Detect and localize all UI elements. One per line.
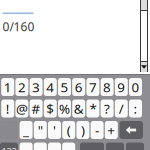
- button[interactable]: 4: [44, 78, 57, 96]
- button[interactable]: 2: [15, 78, 28, 96]
- button[interactable]: +: [105, 121, 118, 139]
- staticText: ): [81, 121, 85, 139]
- button[interactable]: !: [1, 99, 14, 117]
- staticText: -: [95, 121, 99, 139]
- staticText: #: [32, 100, 41, 117]
- staticText: $: [46, 100, 54, 117]
- button[interactable]: 7: [86, 78, 99, 96]
- button[interactable]: :: [129, 99, 142, 117]
- staticText: 8: [103, 78, 111, 96]
- button[interactable]: [48, 142, 61, 150]
- button[interactable]: Delete: [119, 121, 143, 139]
- button[interactable]: Return: [106, 142, 124, 150]
- button[interactable]: [62, 142, 75, 150]
- button[interactable]: [20, 142, 33, 150]
- button[interactable]: &: [72, 99, 85, 117]
- button[interactable]: 123: [0, 142, 18, 150]
- button[interactable]: Scroll down: [140, 62, 148, 72]
- staticText: 9: [117, 78, 125, 96]
- staticText: !: [6, 100, 10, 117]
- button[interactable]: @: [15, 99, 28, 117]
- button[interactable]: 1: [1, 78, 14, 96]
- staticText: 6: [75, 78, 83, 96]
- button[interactable]: 0/160: [2, 12, 66, 34]
- button[interactable]: 8: [101, 78, 114, 96]
- button[interactable]: ?: [101, 99, 114, 117]
- button[interactable]: ": [34, 121, 47, 139]
- staticText: %: [59, 100, 70, 117]
- staticText: 1: [4, 78, 12, 96]
- staticText: &: [74, 100, 84, 117]
- button[interactable]: 0: [129, 78, 142, 96]
- staticText: *: [89, 100, 96, 117]
- staticText: 0/160: [2, 19, 34, 34]
- staticText: 2: [18, 78, 26, 96]
- button[interactable]: 6: [72, 78, 85, 96]
- button[interactable]: _: [20, 121, 33, 139]
- button[interactable]: -: [91, 121, 104, 139]
- button[interactable]: 3: [30, 78, 43, 96]
- button[interactable]: 9: [115, 78, 128, 96]
- staticText: 0: [131, 78, 139, 96]
- staticText: /: [119, 100, 124, 117]
- button[interactable]: Emoji: [126, 142, 144, 150]
- staticText: 3: [32, 78, 40, 96]
- staticText: :: [133, 100, 137, 117]
- button[interactable]: ): [76, 121, 89, 139]
- staticText: ': [53, 121, 56, 139]
- staticText: 7: [89, 78, 97, 96]
- button[interactable]: /: [115, 99, 128, 117]
- staticText: 4: [46, 78, 54, 96]
- button[interactable]: Space: [80, 142, 104, 150]
- button[interactable]: $: [44, 99, 57, 117]
- button[interactable]: #: [30, 99, 43, 117]
- staticText: ": [38, 121, 43, 139]
- staticText: 123: [1, 145, 16, 150]
- button[interactable]: [34, 142, 47, 150]
- button[interactable]: ': [48, 121, 61, 139]
- staticText: _: [23, 121, 29, 139]
- button[interactable]: 5: [58, 78, 71, 96]
- staticText: +: [107, 121, 115, 139]
- staticText: (: [67, 121, 71, 139]
- staticText: 5: [60, 78, 68, 96]
- button[interactable]: %: [58, 99, 71, 117]
- button[interactable]: *: [86, 99, 99, 117]
- button[interactable]: (: [62, 121, 75, 139]
- staticText: @: [16, 100, 28, 117]
- staticText: ?: [104, 100, 110, 117]
